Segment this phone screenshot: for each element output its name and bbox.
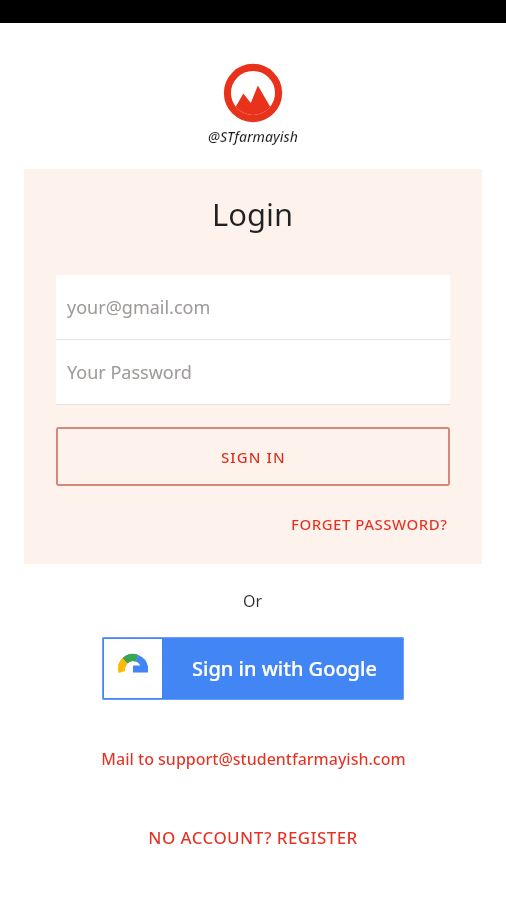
staticText: NO ACCOUNT? REGISTER — [148, 826, 358, 849]
staticText: your@gmail.com — [67, 295, 211, 320]
staticText: Login — [212, 193, 294, 235]
other: Student Farmayish logo — [222, 62, 284, 124]
staticText: FORGET PASSWORD? — [291, 514, 448, 534]
staticText: Or — [243, 590, 263, 612]
button[interactable]: your@gmail.com — [56, 275, 450, 339]
button[interactable]: FORGET PASSWORD? — [289, 510, 450, 538]
staticText: Mail to support@studentfarmayish.com — [101, 748, 406, 770]
button[interactable]: Your Password — [56, 340, 450, 404]
button[interactable]: SIGN IN — [56, 427, 450, 486]
staticText: @STfarmayish — [208, 127, 299, 146]
staticText: Sign in with Google — [192, 655, 377, 682]
button[interactable]: NO ACCOUNT? REGISTER — [140, 822, 366, 853]
staticText: SIGN IN — [221, 447, 286, 467]
staticText: Your Password — [67, 360, 192, 385]
button[interactable]: Mail to support@studentfarmayish.com — [93, 744, 414, 774]
button[interactable]: Sign in with Google — [102, 637, 404, 700]
